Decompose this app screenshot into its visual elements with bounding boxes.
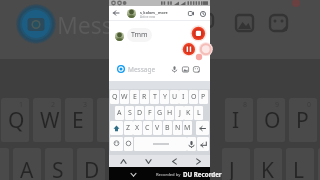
- staticText: s_kolom__more: [140, 10, 168, 15]
- staticText: U: [172, 92, 178, 102]
- button[interactable]: A: [115, 106, 124, 120]
- button[interactable]: Q: [110, 90, 119, 104]
- staticText: 8: [243, 100, 248, 110]
- staticText: X: [135, 123, 140, 133]
- button[interactable]: Move right: [192, 155, 204, 167]
- staticText: O: [191, 92, 197, 102]
- button[interactable]: C: [143, 121, 152, 135]
- staticText: Message: [128, 65, 156, 74]
- button[interactable]: X: [133, 121, 142, 135]
- staticText: Messe: [57, 9, 126, 40]
- button[interactable]: V: [153, 121, 162, 135]
- staticText: Q: [112, 92, 118, 102]
- button[interactable]: L: [194, 106, 203, 120]
- staticText: W: [121, 92, 128, 102]
- button[interactable]: E: [130, 90, 139, 104]
- button[interactable]: Camera: [117, 65, 125, 73]
- button[interactable]: Stickers: [192, 65, 201, 74]
- staticText: K: [186, 108, 191, 118]
- staticText: D: [137, 108, 143, 118]
- button[interactable]: S: [125, 106, 134, 120]
- button[interactable]: Backspace: [196, 121, 209, 135]
- button[interactable]: Back: [109, 7, 123, 19]
- staticText: F: [148, 108, 152, 118]
- staticText: E: [72, 106, 84, 135]
- staticText: Tmm: [131, 30, 148, 40]
- button[interactable]: Symbols: [110, 137, 123, 151]
- button[interactable]: F: [145, 106, 154, 120]
- staticText: S: [128, 108, 132, 118]
- button[interactable]: O: [189, 90, 198, 104]
- staticText: S: [52, 156, 64, 180]
- staticText: T: [153, 92, 157, 102]
- staticText: P: [201, 92, 206, 102]
- button[interactable]: Move left: [168, 155, 180, 167]
- staticText: A: [117, 108, 122, 118]
- staticText: N: [175, 123, 181, 133]
- staticText: I: [232, 106, 240, 135]
- button[interactable]: Comma: [124, 137, 133, 151]
- button[interactable]: Photos: [181, 65, 190, 74]
- staticText: DU Recorder: [183, 170, 222, 178]
- button[interactable]: Hide keyboard: [127, 168, 139, 180]
- staticText: W: [40, 106, 60, 135]
- staticText: 9: [275, 100, 280, 110]
- button[interactable]: U: [170, 90, 179, 104]
- staticText: J: [179, 108, 181, 118]
- staticText: Active now: [140, 15, 156, 19]
- staticText: R: [142, 92, 147, 102]
- staticText: C: [145, 123, 150, 133]
- staticText: L: [197, 108, 201, 118]
- button[interactable]: Move up: [117, 155, 129, 167]
- staticText: V: [155, 123, 160, 133]
- button[interactable]: Move down: [142, 155, 154, 167]
- staticText: D: [84, 156, 100, 180]
- button[interactable]: I: [179, 90, 188, 104]
- staticText: 0: [307, 100, 312, 110]
- button[interactable]: Y: [160, 90, 169, 104]
- button[interactable]: Video call: [185, 9, 196, 18]
- button[interactable]: K: [184, 106, 193, 120]
- staticText: Y: [163, 92, 167, 102]
- staticText: K: [261, 156, 274, 180]
- staticText: 3: [83, 100, 88, 110]
- button[interactable]: Voice input: [187, 137, 196, 151]
- staticText: P: [296, 106, 309, 135]
- staticText: L: [293, 156, 305, 180]
- button[interactable]: W: [120, 90, 129, 104]
- staticText: A: [20, 156, 34, 180]
- staticText: E: [133, 92, 137, 102]
- staticText: O: [264, 106, 281, 135]
- staticText: M: [184, 123, 191, 133]
- staticText: B: [165, 123, 170, 133]
- button[interactable]: T: [150, 90, 159, 104]
- button[interactable]: P: [199, 90, 208, 104]
- staticText: J: [229, 156, 235, 180]
- button[interactable]: N: [173, 121, 182, 135]
- button[interactable]: J: [175, 106, 184, 120]
- staticText: H: [167, 108, 173, 118]
- button[interactable]: R: [140, 90, 149, 104]
- button[interactable]: Shift: [110, 121, 123, 135]
- staticText: I: [182, 92, 185, 102]
- button[interactable]: M: [183, 121, 192, 135]
- button[interactable]: Conversation information: [198, 9, 208, 18]
- button[interactable]: G: [155, 106, 164, 120]
- button[interactable]: Z: [124, 121, 133, 135]
- button[interactable]: Voice message: [170, 65, 179, 74]
- button[interactable]: Enter: [197, 137, 209, 151]
- staticText: G: [157, 108, 163, 118]
- staticText: Q: [8, 106, 25, 135]
- button[interactable]: H: [165, 106, 174, 120]
- staticText: Z: [126, 123, 131, 133]
- button[interactable]: Tmm: [127, 28, 152, 42]
- button[interactable]: D: [135, 106, 144, 120]
- staticText: Recorded by: [156, 172, 181, 178]
- button[interactable]: B: [163, 121, 172, 135]
- button[interactable]: Space: [134, 137, 187, 151]
